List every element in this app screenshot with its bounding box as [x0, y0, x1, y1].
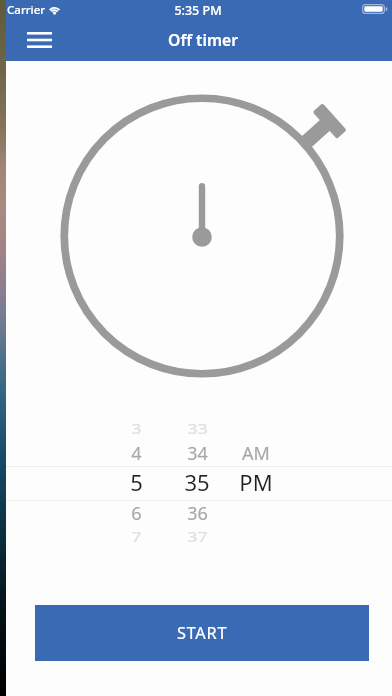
staticText: 3	[131, 420, 142, 439]
staticText: AM	[242, 441, 270, 466]
staticText: 34	[187, 441, 208, 466]
staticText: START	[177, 622, 228, 644]
button[interactable]: Open navigation drawer	[19, 20, 59, 60]
staticText: 5:35 PM	[174, 2, 222, 19]
staticText: PM	[239, 467, 273, 497]
staticText: 36	[187, 501, 208, 526]
button[interactable]: START	[35, 605, 369, 661]
staticText: 4	[131, 441, 142, 466]
staticText: 33	[187, 420, 208, 439]
staticText: 35	[184, 467, 210, 497]
staticText: 5	[130, 467, 143, 497]
staticText: 6	[131, 501, 142, 526]
staticText: 37	[187, 528, 208, 547]
staticText: 7	[131, 528, 142, 547]
staticText: Carrier	[7, 2, 46, 18]
staticText: Off timer	[168, 29, 238, 50]
